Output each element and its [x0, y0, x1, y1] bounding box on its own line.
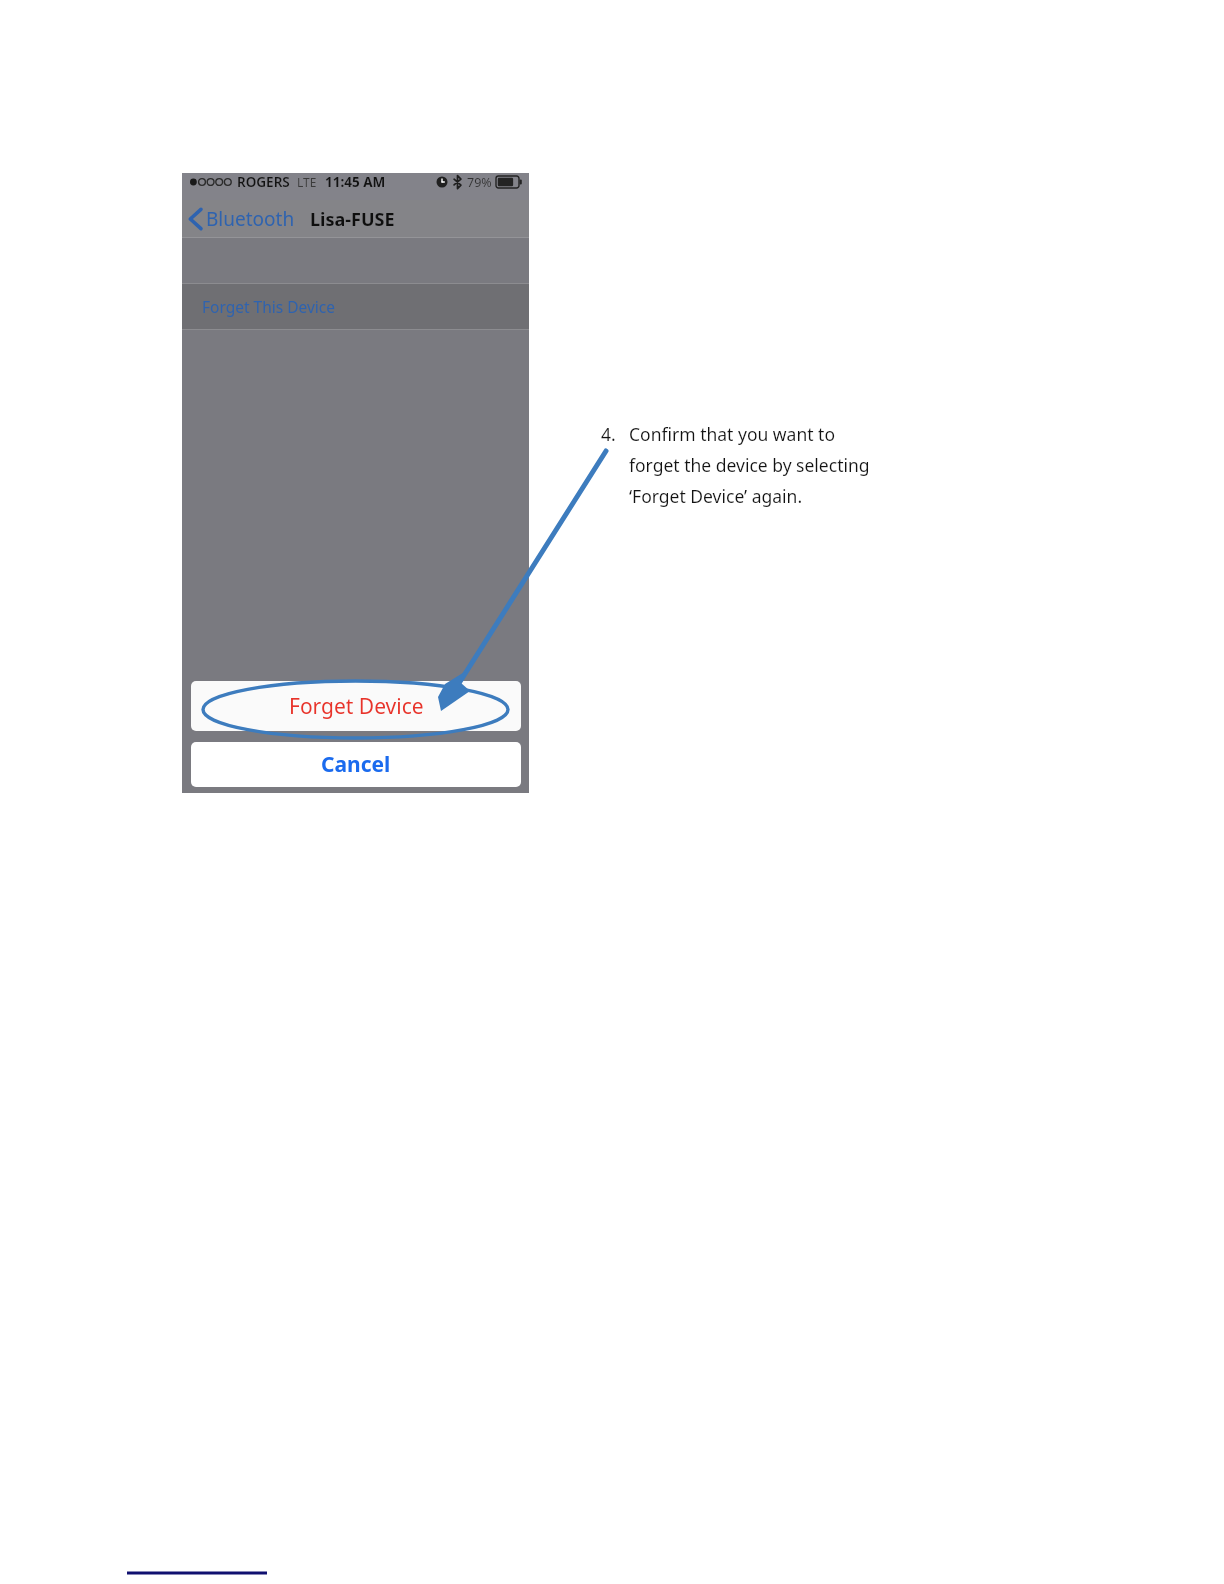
- staticText: Lisa-FUSE: [310, 207, 395, 232]
- staticText: Forget This Device: [202, 296, 336, 317]
- staticText: Confirm that you want to: [629, 422, 835, 446]
- staticText: ROGERS: [237, 173, 290, 191]
- staticText: forget the device by selecting: [629, 453, 870, 477]
- staticText: 79%: [467, 174, 492, 191]
- staticText: Bluetooth: [206, 206, 295, 232]
- other: Back: [189, 208, 202, 230]
- staticText: Forget Device: [289, 692, 424, 721]
- staticText: LTE: [297, 174, 317, 190]
- staticText: 4.: [601, 422, 616, 446]
- button[interactable]: Forget This Device: [182, 283, 529, 330]
- button[interactable]: Back: [189, 206, 295, 232]
- staticText: ‘Forget Device’ again.: [629, 484, 803, 508]
- button[interactable]: Forget Device: [191, 681, 521, 731]
- button[interactable]: Cancel: [191, 742, 521, 787]
- staticText: Cancel: [321, 750, 391, 779]
- staticText: 11:45 AM: [325, 173, 386, 191]
